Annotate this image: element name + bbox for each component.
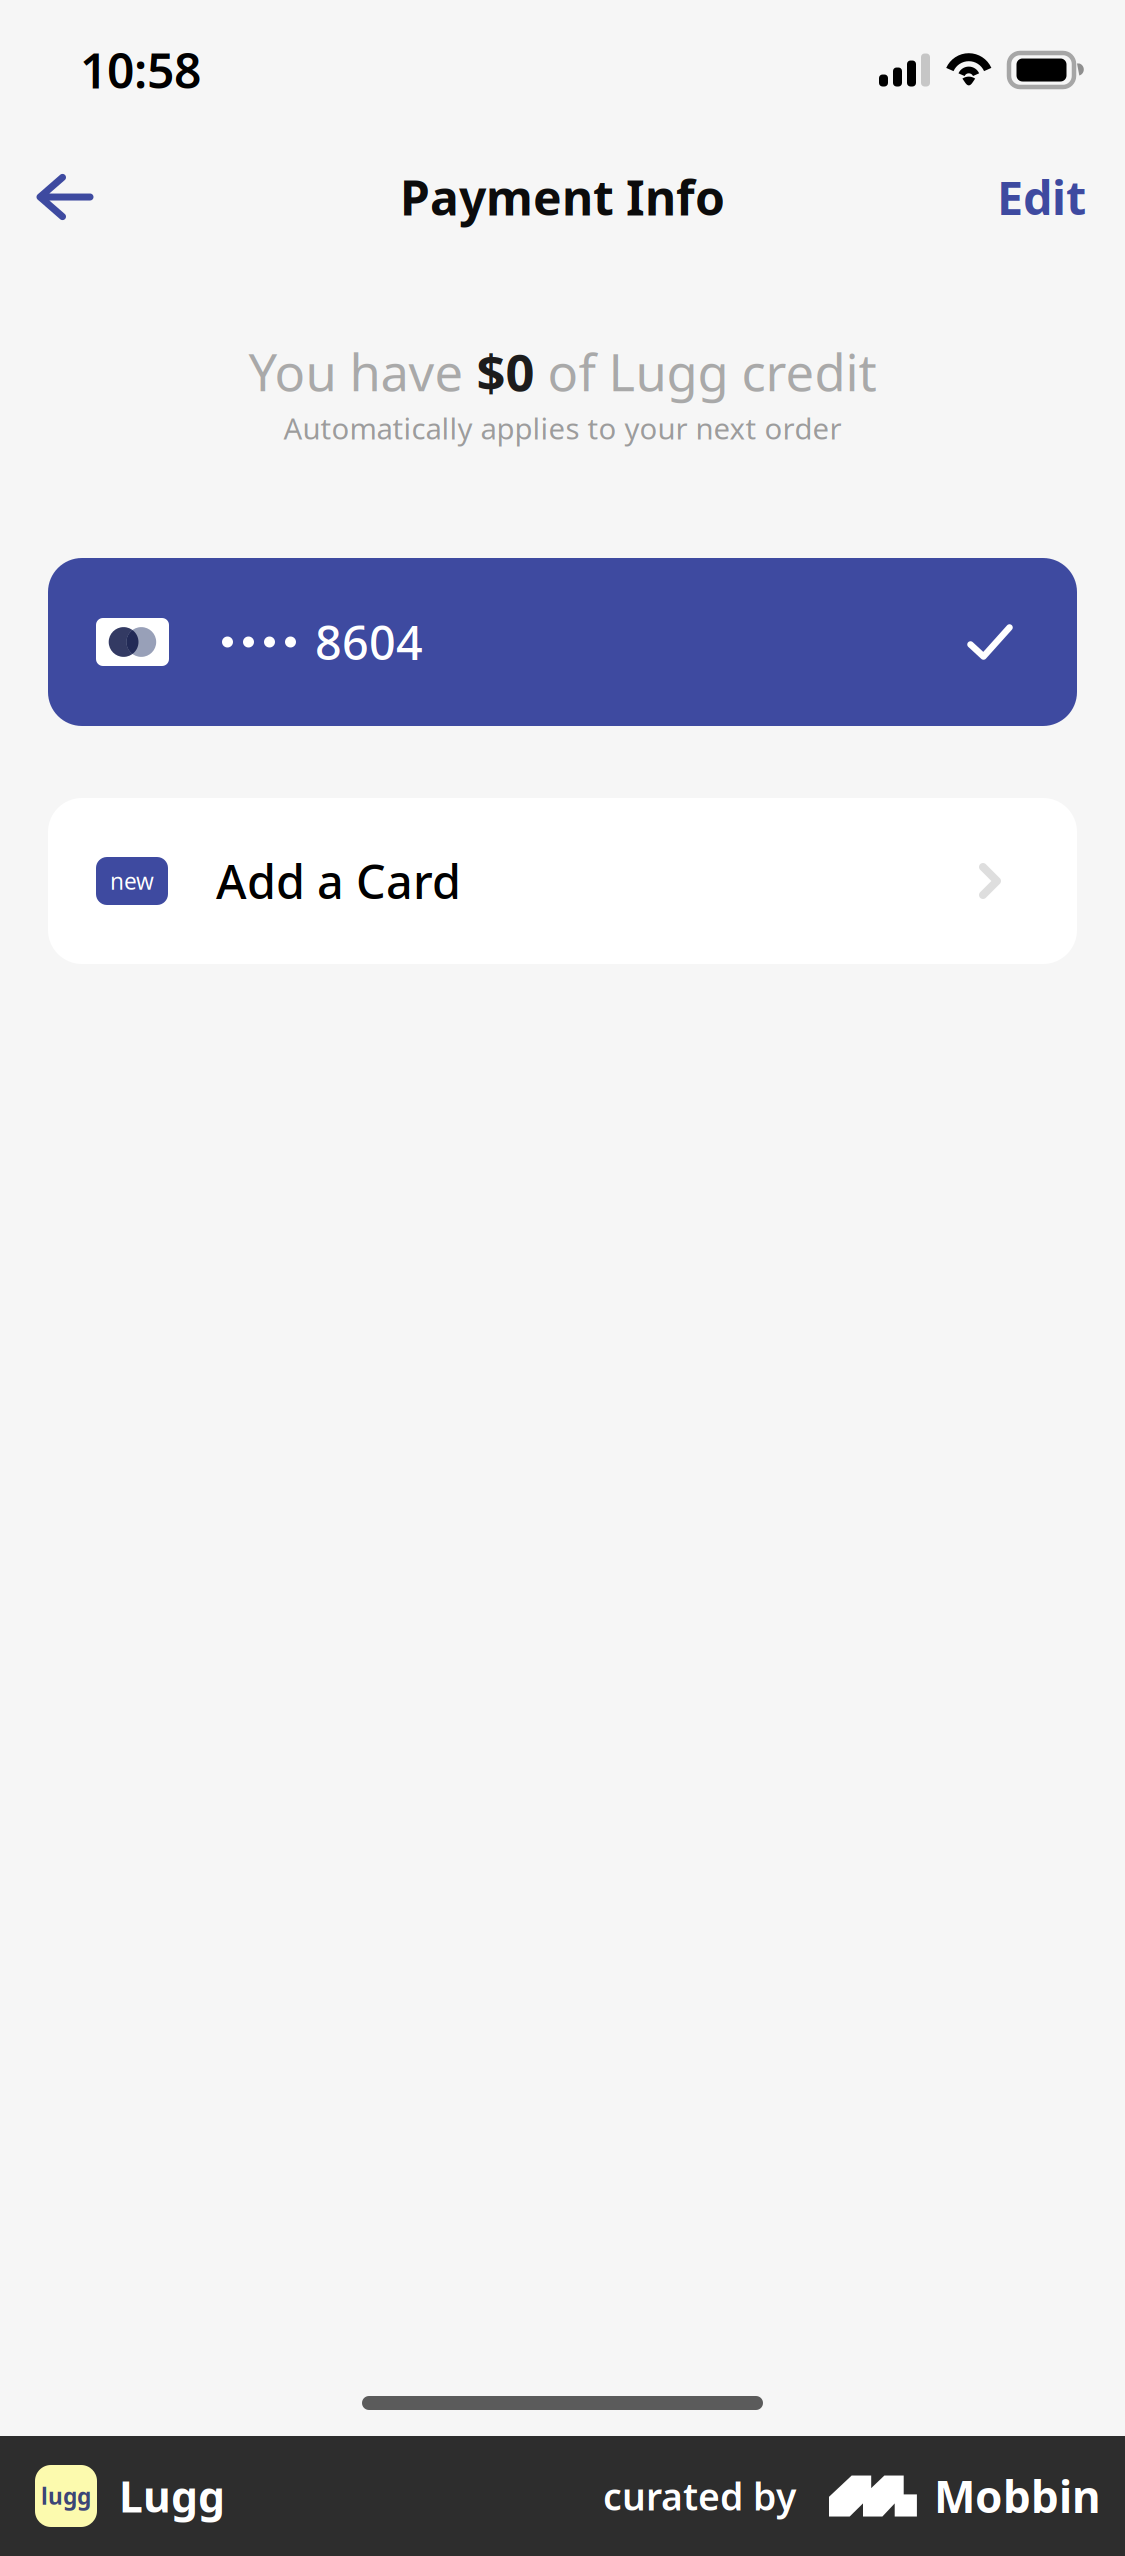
staticText: Payment Info bbox=[400, 165, 725, 229]
staticText: Mobbin bbox=[934, 2467, 1101, 2525]
staticText: 8604 bbox=[315, 611, 423, 673]
button[interactable]: Back bbox=[11, 147, 119, 247]
staticText: Edit bbox=[997, 166, 1086, 228]
staticText: 10:58 bbox=[80, 38, 201, 102]
staticText: You have bbox=[248, 338, 476, 405]
staticText: curated by bbox=[603, 2471, 796, 2521]
button[interactable]: new bbox=[48, 798, 1077, 964]
staticText: lugg bbox=[41, 2481, 91, 2511]
staticText: new bbox=[110, 866, 154, 896]
button[interactable]: Edit bbox=[983, 147, 1100, 247]
staticText: of Lugg credit bbox=[534, 338, 876, 405]
staticText: Add a Card bbox=[216, 850, 461, 912]
button[interactable]: 8604 bbox=[48, 558, 1077, 726]
staticText: $0 bbox=[476, 338, 534, 405]
staticText: Lugg bbox=[119, 2468, 225, 2524]
staticText: Automatically applies to your next order bbox=[283, 408, 841, 447]
